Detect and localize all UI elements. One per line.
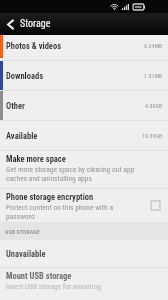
button[interactable]: Other [0,91,168,120]
staticText: Downloads [6,71,44,81]
button[interactable]: Back [0,13,59,35]
staticText: 4.80GB [145,102,163,109]
button[interactable]: Make more space [0,151,168,188]
button[interactable]: Photos & videos [0,35,168,58]
button[interactable]: Mount USB storage [0,268,168,300]
staticText: 10.39GB [142,132,163,139]
other: Back [7,20,13,29]
staticText: Protect content on this phone with a pas… [6,203,113,221]
button[interactable]: Downloads [0,61,168,90]
staticText: Make more space [6,154,66,164]
button[interactable]: Available [0,121,168,150]
button[interactable]: Phone storage encryption [0,189,168,222]
staticText: Get more storage space by clearing out a… [6,165,135,183]
staticText: 1.51MB [144,72,163,79]
staticText: Phone storage encryption [6,192,94,202]
staticText: Other [6,101,25,111]
staticText: Available [6,131,38,141]
staticText: Storage [20,18,51,30]
staticText: Photos & videos [6,41,62,51]
staticText: Unavailable [6,249,46,259]
staticText: Insert USB storage for mounting [6,282,101,291]
button[interactable]: Unavailable [0,240,168,267]
staticText: USB STORAGE [5,228,40,235]
staticText: Mount USB storage [6,271,72,281]
staticText: 6.34MB [144,42,163,49]
